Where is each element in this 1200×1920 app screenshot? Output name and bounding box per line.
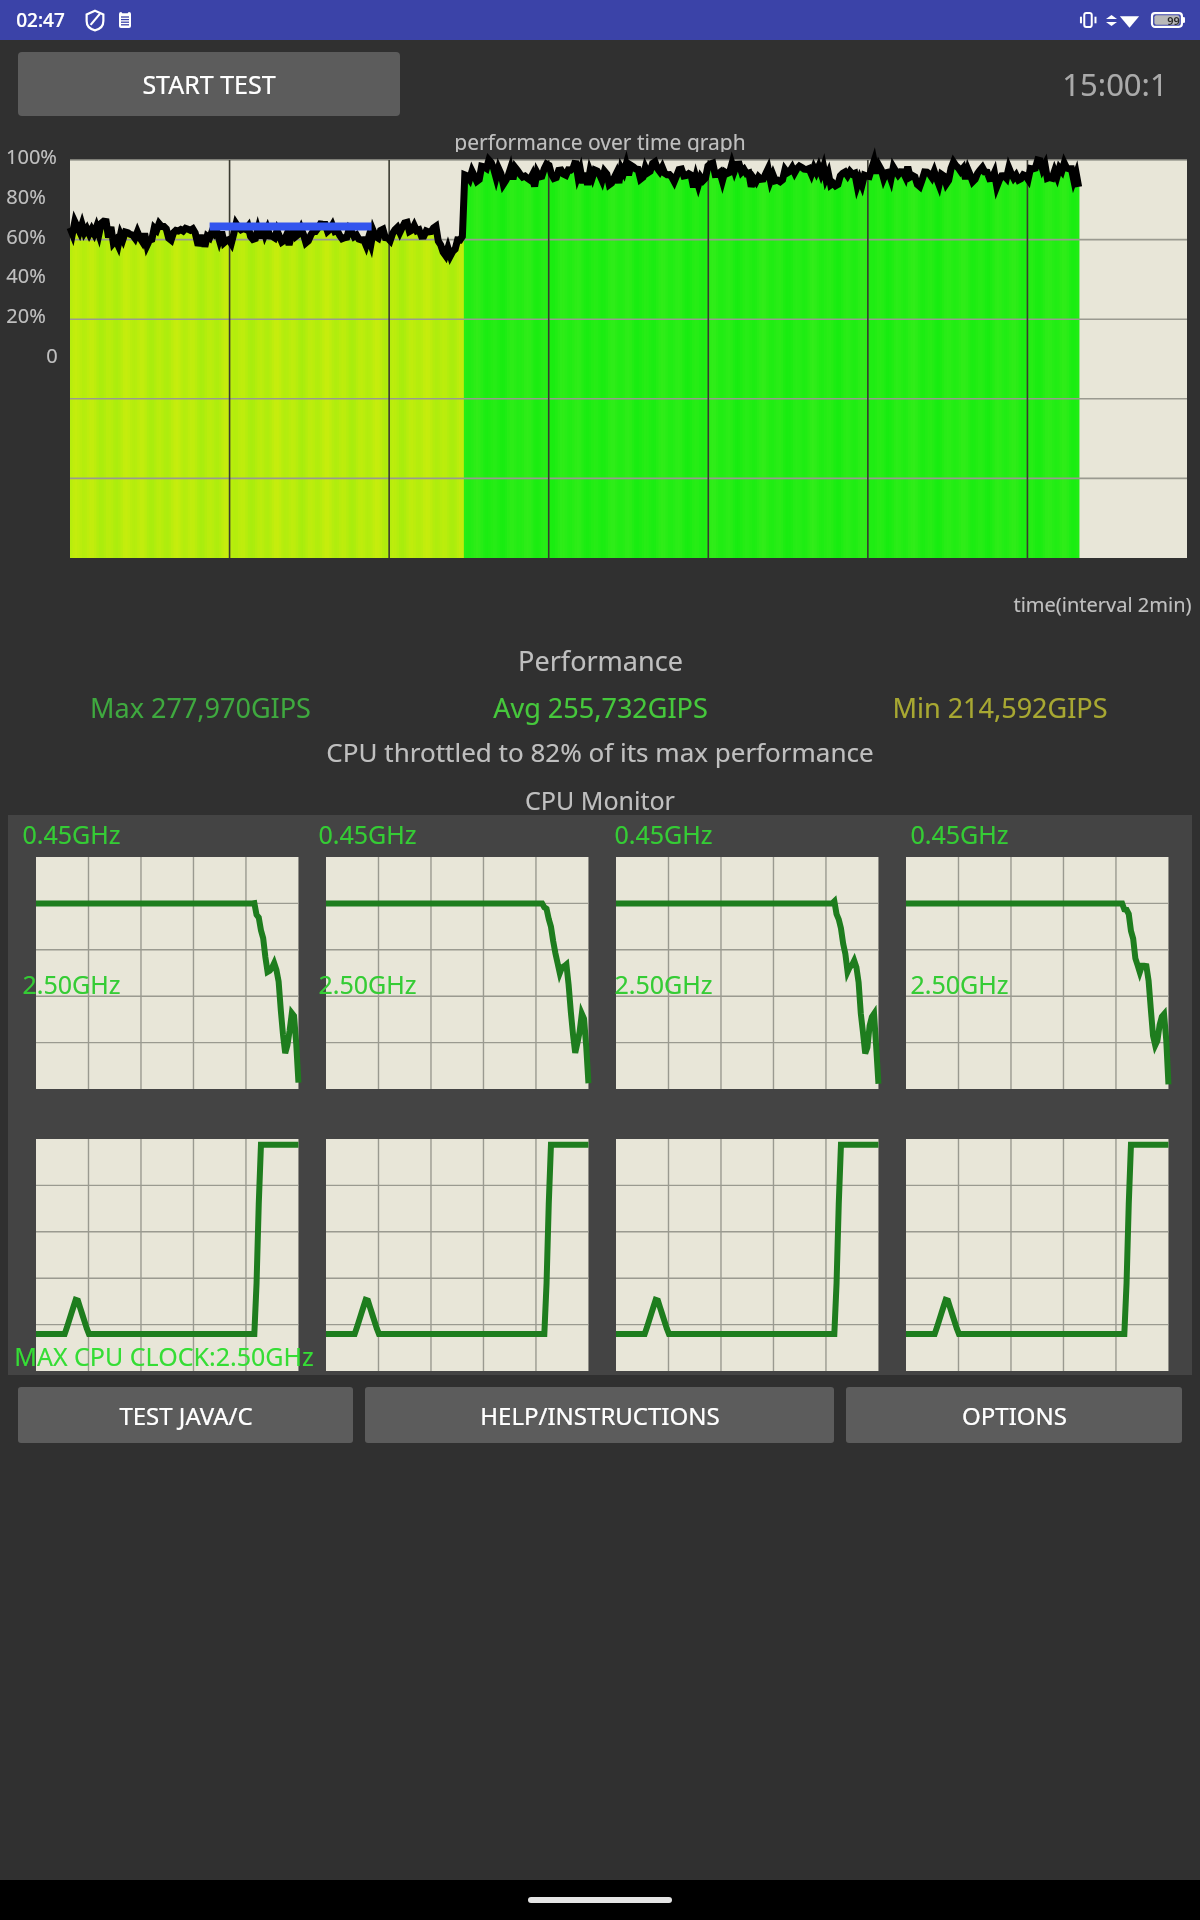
staticText: 80% xyxy=(6,183,46,210)
staticText: 0.45GHz xyxy=(910,817,1009,851)
staticText: Min 214,592GIPS xyxy=(892,689,1108,726)
staticText: 0.45GHz xyxy=(22,817,121,851)
other: Home xyxy=(528,1897,672,1903)
staticText: START TEST xyxy=(142,67,276,101)
staticText: 2.50GHz xyxy=(614,967,713,1001)
staticText: 2.50GHz xyxy=(318,967,417,1001)
staticText: 99 xyxy=(1167,13,1180,28)
staticText: Avg 255,732GIPS xyxy=(493,689,708,726)
button[interactable]: OPTIONS xyxy=(846,1387,1182,1443)
staticText: HELP/INSTRUCTIONS xyxy=(480,1399,720,1432)
staticText: 0.45GHz xyxy=(318,817,417,851)
staticText: performance over time graph xyxy=(454,128,746,152)
staticText: 0 xyxy=(46,342,58,369)
staticText: Max 277,970GIPS xyxy=(90,689,311,726)
staticText: 20% xyxy=(6,302,46,329)
staticText: 02:47 xyxy=(16,7,65,33)
staticText: 100% xyxy=(6,143,57,170)
staticText: 40% xyxy=(6,262,46,289)
staticText: OPTIONS xyxy=(962,1399,1067,1432)
button[interactable]: TEST JAVA/C xyxy=(18,1387,353,1443)
staticText: CPU Monitor xyxy=(525,783,675,815)
staticText: 2.50GHz xyxy=(22,967,121,1001)
button[interactable]: START TEST xyxy=(18,52,400,116)
staticText: 15:00:1 xyxy=(1062,63,1168,105)
staticText: Performance xyxy=(518,642,683,679)
staticText: CPU throttled to 82% of its max performa… xyxy=(326,734,874,769)
staticText: MAX CPU CLOCK:2.50GHz xyxy=(14,1339,314,1373)
staticText: 60% xyxy=(6,223,46,250)
staticText: 0.45GHz xyxy=(614,817,713,851)
staticText: 2.50GHz xyxy=(910,967,1009,1001)
staticText: time(interval 2min) xyxy=(1013,591,1192,618)
button[interactable]: HELP/INSTRUCTIONS xyxy=(365,1387,834,1443)
staticText: TEST JAVA/C xyxy=(119,1399,253,1432)
